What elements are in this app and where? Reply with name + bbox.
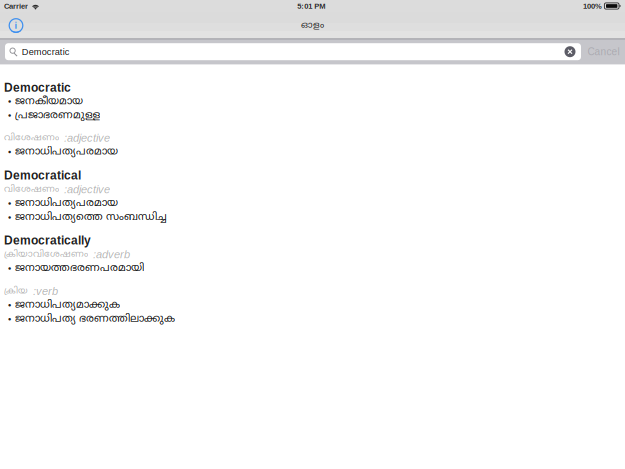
staticText: ജനാധിപത്യ ഭരണത്തിലാക്കുക (15, 312, 175, 326)
staticText: 5:01 PM (297, 2, 325, 10)
staticText: :verb (33, 285, 58, 297)
staticText: Carrier (4, 2, 28, 10)
staticText: • (8, 147, 11, 157)
staticText: • (8, 314, 11, 324)
staticText: വിശേഷണം (4, 132, 59, 144)
staticText: Democratic (22, 47, 70, 57)
staticText: ഓളം (301, 20, 324, 31)
staticText: • (8, 198, 11, 209)
staticText: ക്രിയാവിശേഷണം (4, 249, 88, 260)
staticText: • (8, 212, 11, 223)
staticText: ഓളം (301, 20, 324, 31)
staticText: Democratical (4, 169, 81, 182)
staticText: • (8, 110, 11, 121)
staticText: i (14, 20, 17, 31)
staticText: :adverb (93, 248, 130, 261)
staticText: ജനായത്തഭരണപരമായി (15, 262, 144, 275)
staticText: :adjective (64, 183, 110, 196)
staticText: ജനാധിപത്യത്തെ സംബന്ധിച്ച (15, 211, 167, 224)
staticText: • (8, 96, 11, 107)
button[interactable]: Info (0, 16, 25, 34)
staticText: Democratically (4, 234, 91, 247)
staticText: Cancel (587, 46, 619, 57)
staticText: പ്രജാഭരണമുള്ള (15, 109, 100, 122)
staticText: ക്രിയ (4, 285, 28, 297)
staticText: 100% (583, 2, 602, 10)
staticText: ജനാധിപത്യപരമായ (15, 197, 118, 210)
staticText: :adjective (64, 132, 110, 144)
staticText: ജനാധിപത്യപരമായ (15, 145, 118, 159)
button[interactable]: Cancel (581, 39, 624, 64)
staticText: ജനകീയമായ (15, 95, 83, 108)
staticText: Democratic (4, 81, 71, 94)
staticText: വിശേഷണം (4, 184, 59, 195)
staticText: i (14, 20, 17, 31)
staticText: ജനാധിപത്യമാക്കുക (15, 298, 120, 312)
staticText: • (8, 300, 11, 310)
staticText: • (8, 263, 11, 274)
button[interactable]: Info (0, 16, 25, 34)
